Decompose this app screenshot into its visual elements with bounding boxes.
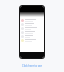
button[interactable] bbox=[20, 18, 44, 22]
button[interactable]: Click here to see details bbox=[21, 64, 43, 68]
button[interactable] bbox=[20, 22, 44, 26]
button[interactable] bbox=[20, 34, 44, 38]
button[interactable] bbox=[20, 26, 44, 30]
button[interactable] bbox=[20, 30, 44, 34]
button[interactable] bbox=[20, 38, 44, 42]
button[interactable] bbox=[20, 52, 44, 58]
